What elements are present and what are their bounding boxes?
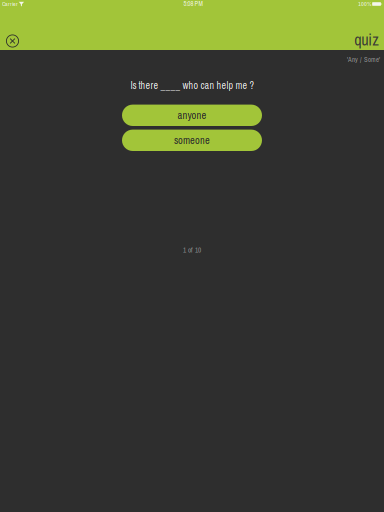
button[interactable]: Close [0,25,25,57]
button[interactable]: someone [122,130,262,151]
staticText: Carrier [2,0,18,8]
staticText: 'Any / Some' [347,55,380,64]
staticText: 1 of 10 [183,245,201,255]
staticText: anyone [177,108,206,122]
staticText: 100% [358,0,371,8]
staticText: quiz [354,29,379,50]
staticText: Is there ____ who can help me ? [130,79,254,92]
button[interactable]: anyone [122,105,262,126]
staticText: someone [174,133,210,147]
staticText: 5:08 PM [183,0,202,8]
